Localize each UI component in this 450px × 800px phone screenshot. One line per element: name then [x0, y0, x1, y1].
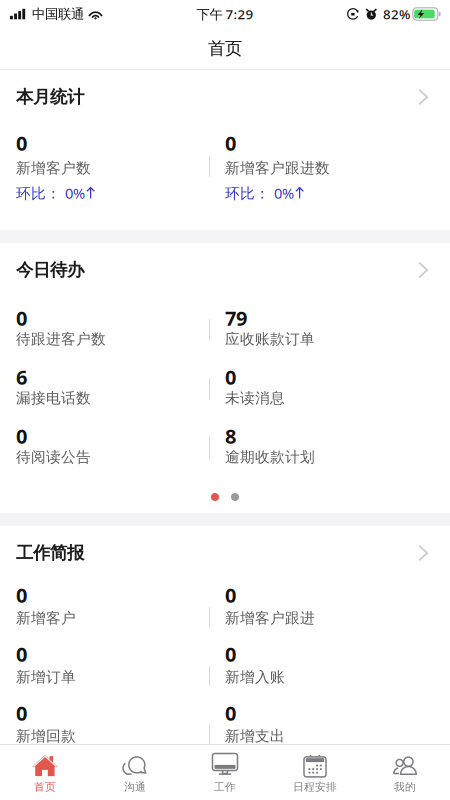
staticText: 应收账款订单 [225, 330, 315, 348]
staticText: 82% [383, 5, 410, 23]
staticText: 新增订单 [16, 668, 76, 686]
staticText: 0 [16, 130, 27, 156]
staticText: 79 [225, 305, 247, 331]
button[interactable]: 工作简报 [0, 526, 450, 580]
staticText: 环比： 0% [16, 183, 85, 203]
staticText: 待跟进客户数 [16, 330, 106, 348]
staticText: 沟通 [124, 780, 146, 793]
staticText: 下午 7:29 [196, 5, 253, 23]
button[interactable]: 今日待办 [0, 243, 450, 297]
staticText: 0 [16, 423, 27, 449]
staticText: 新增入账 [225, 668, 285, 686]
button[interactable]: 工作 [180, 745, 270, 799]
staticText: 逾期收款计划 [225, 448, 315, 466]
staticText: 新增支出 [225, 727, 285, 745]
staticText: 8 [225, 423, 236, 449]
staticText: 漏接电话数 [16, 389, 91, 407]
staticText: 未读消息 [225, 389, 285, 407]
staticText: 新增客户跟进 [225, 609, 315, 627]
button[interactable]: 我的 [360, 745, 450, 799]
staticText: 首页 [34, 780, 56, 793]
staticText: 日程安排 [293, 780, 337, 793]
staticText: 0 [16, 700, 27, 726]
staticText: 新增客户 [16, 609, 76, 627]
staticText: 待阅读公告 [16, 448, 91, 466]
staticText: 今日待办 [16, 259, 84, 281]
staticText: 新增客户数 [16, 159, 91, 177]
staticText: 0 [225, 130, 236, 156]
staticText: 0 [16, 305, 27, 331]
staticText: 新增客户跟进数 [225, 159, 330, 177]
staticText: 新增回款 [16, 727, 76, 745]
staticText: 0 [225, 582, 236, 608]
staticText: 工作 [214, 780, 236, 793]
button[interactable]: 首页 [0, 745, 90, 799]
staticText: 我的 [394, 780, 416, 793]
button[interactable]: 日程安排 [270, 745, 360, 799]
staticText: 中国联通 [32, 6, 84, 22]
staticText: 工作简报 [16, 542, 84, 564]
staticText: 首页 [208, 38, 242, 59]
staticText: 0 [225, 364, 236, 390]
staticText: 0 [16, 582, 27, 608]
button[interactable]: 沟通 [90, 745, 180, 799]
button[interactable]: 本月统计 [0, 70, 450, 124]
staticText: 环比： 0% [225, 183, 294, 203]
staticText: 0 [225, 641, 236, 667]
staticText: 本月统计 [16, 86, 84, 108]
staticText: 0 [225, 700, 236, 726]
staticText: 6 [16, 364, 27, 390]
staticText: 0 [16, 641, 27, 667]
